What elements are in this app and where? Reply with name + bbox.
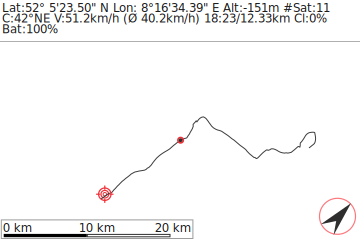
staticText: 20 km	[155, 221, 191, 235]
button[interactable]: Compass	[0, 0, 360, 240]
staticText: Bat:100%	[2, 22, 58, 36]
staticText: C:42°NE V:51.2km/h (Ø 40.2km/h) 18:23/12…	[2, 12, 327, 25]
staticText: 0 km	[3, 221, 32, 235]
staticText: Lat:52° 5'23.50" N Lon: 8°16'34.39" E Al…	[2, 1, 330, 15]
staticText: 10 km	[79, 221, 115, 235]
